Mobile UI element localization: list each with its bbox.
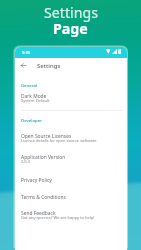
button[interactable]: Application Version bbox=[15, 152, 127, 164]
staticText: Open Source Licenses bbox=[21, 133, 72, 140]
staticText: 9:30 bbox=[22, 50, 31, 56]
button[interactable]: Privacy Policy bbox=[15, 175, 127, 184]
button[interactable]: Send Feedback bbox=[15, 208, 127, 220]
button[interactable]: Back bbox=[18, 60, 29, 71]
staticText: Privacy Policy bbox=[21, 177, 52, 184]
staticText: Got any queries? We are happy to help! bbox=[21, 215, 95, 220]
button[interactable]: Dark Mode bbox=[15, 91, 127, 103]
staticText: Developer bbox=[21, 117, 42, 123]
staticText: License details for open source software bbox=[21, 138, 97, 143]
staticText: Settings bbox=[44, 3, 98, 22]
staticText: Settings bbox=[37, 62, 61, 70]
staticText: Application Version bbox=[21, 154, 66, 161]
button[interactable]: Terms & Conditions bbox=[15, 192, 127, 201]
staticText: Dark Mode bbox=[21, 93, 47, 100]
staticText: 2.0.3 bbox=[21, 159, 31, 164]
staticText: Send Feedback bbox=[21, 210, 56, 217]
staticText: Page bbox=[53, 19, 88, 38]
button[interactable]: Settings bbox=[32, 60, 72, 71]
staticText: System Default bbox=[21, 98, 50, 103]
button[interactable]: Open Source Licenses bbox=[15, 131, 127, 143]
staticText: General bbox=[21, 82, 38, 88]
staticText: Terms & Conditions bbox=[21, 194, 66, 201]
